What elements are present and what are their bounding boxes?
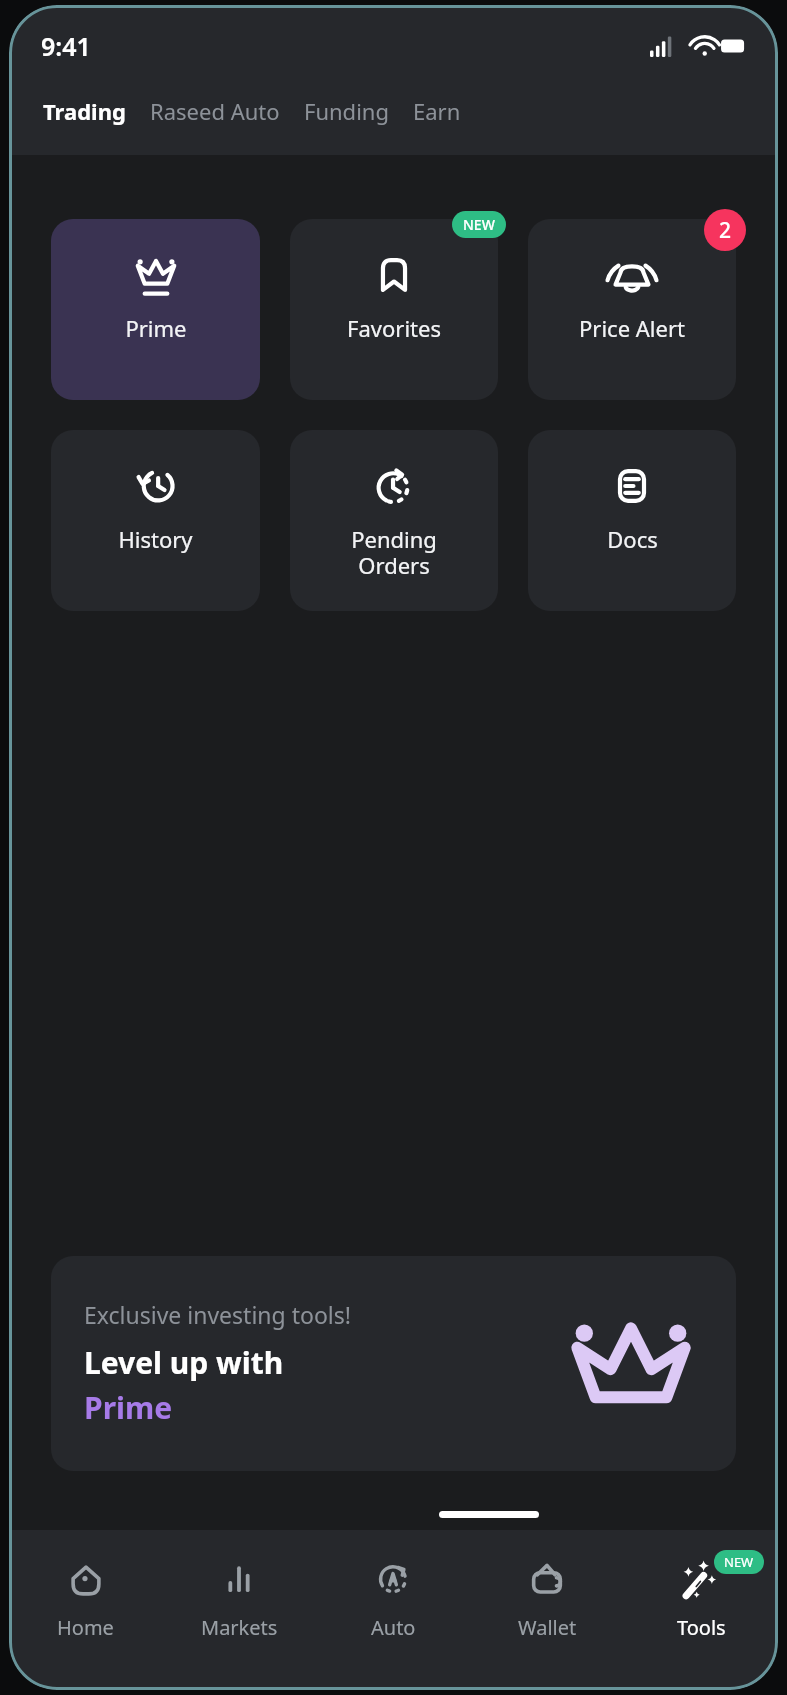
button[interactable]: Markets xyxy=(162,1530,316,1690)
staticText: Funding xyxy=(304,96,389,126)
button[interactable]: Funding xyxy=(292,89,401,133)
staticText: Price Alert xyxy=(579,313,685,343)
button[interactable]: NEW xyxy=(624,1530,778,1690)
staticText: Wallet xyxy=(518,1614,577,1641)
staticText: 2 xyxy=(719,216,732,245)
staticText: Home xyxy=(57,1614,114,1641)
button[interactable]: Favorites xyxy=(290,219,498,400)
button[interactable]: Price Alert xyxy=(528,219,736,400)
staticText: Prime xyxy=(84,1387,173,1428)
staticText: History xyxy=(118,524,193,554)
button[interactable]: Docs xyxy=(528,430,736,611)
button[interactable]: Trading xyxy=(31,89,138,133)
staticText: Markets xyxy=(201,1614,278,1641)
staticText: Favorites xyxy=(347,313,441,343)
staticText: Raseed Auto xyxy=(150,96,280,126)
staticText: Auto xyxy=(371,1614,416,1641)
staticText: Tools xyxy=(677,1614,726,1641)
button[interactable]: Wallet xyxy=(470,1530,624,1690)
button[interactable]: Auto xyxy=(316,1530,470,1690)
button[interactable]: Earn xyxy=(401,89,473,133)
staticText: Exclusive investing tools! xyxy=(84,1299,351,1330)
button[interactable]: Raseed Auto xyxy=(138,89,292,133)
staticText: Prime xyxy=(125,313,187,343)
button[interactable]: History xyxy=(51,430,260,611)
staticText: 9:41 xyxy=(41,29,91,63)
staticText: NEW xyxy=(724,1553,754,1571)
button[interactable]: Prime xyxy=(51,219,260,400)
button[interactable]: Exclusive investing tools! xyxy=(51,1256,736,1471)
staticText: Pending Orders xyxy=(351,524,437,581)
staticText: Earn xyxy=(413,96,461,126)
staticText: NEW xyxy=(463,215,495,234)
staticText: Level up with xyxy=(84,1342,284,1383)
staticText: Docs xyxy=(607,524,658,554)
button[interactable]: Pending Orders xyxy=(290,430,498,611)
button[interactable]: Home xyxy=(9,1530,162,1690)
staticText: Trading xyxy=(43,96,126,126)
